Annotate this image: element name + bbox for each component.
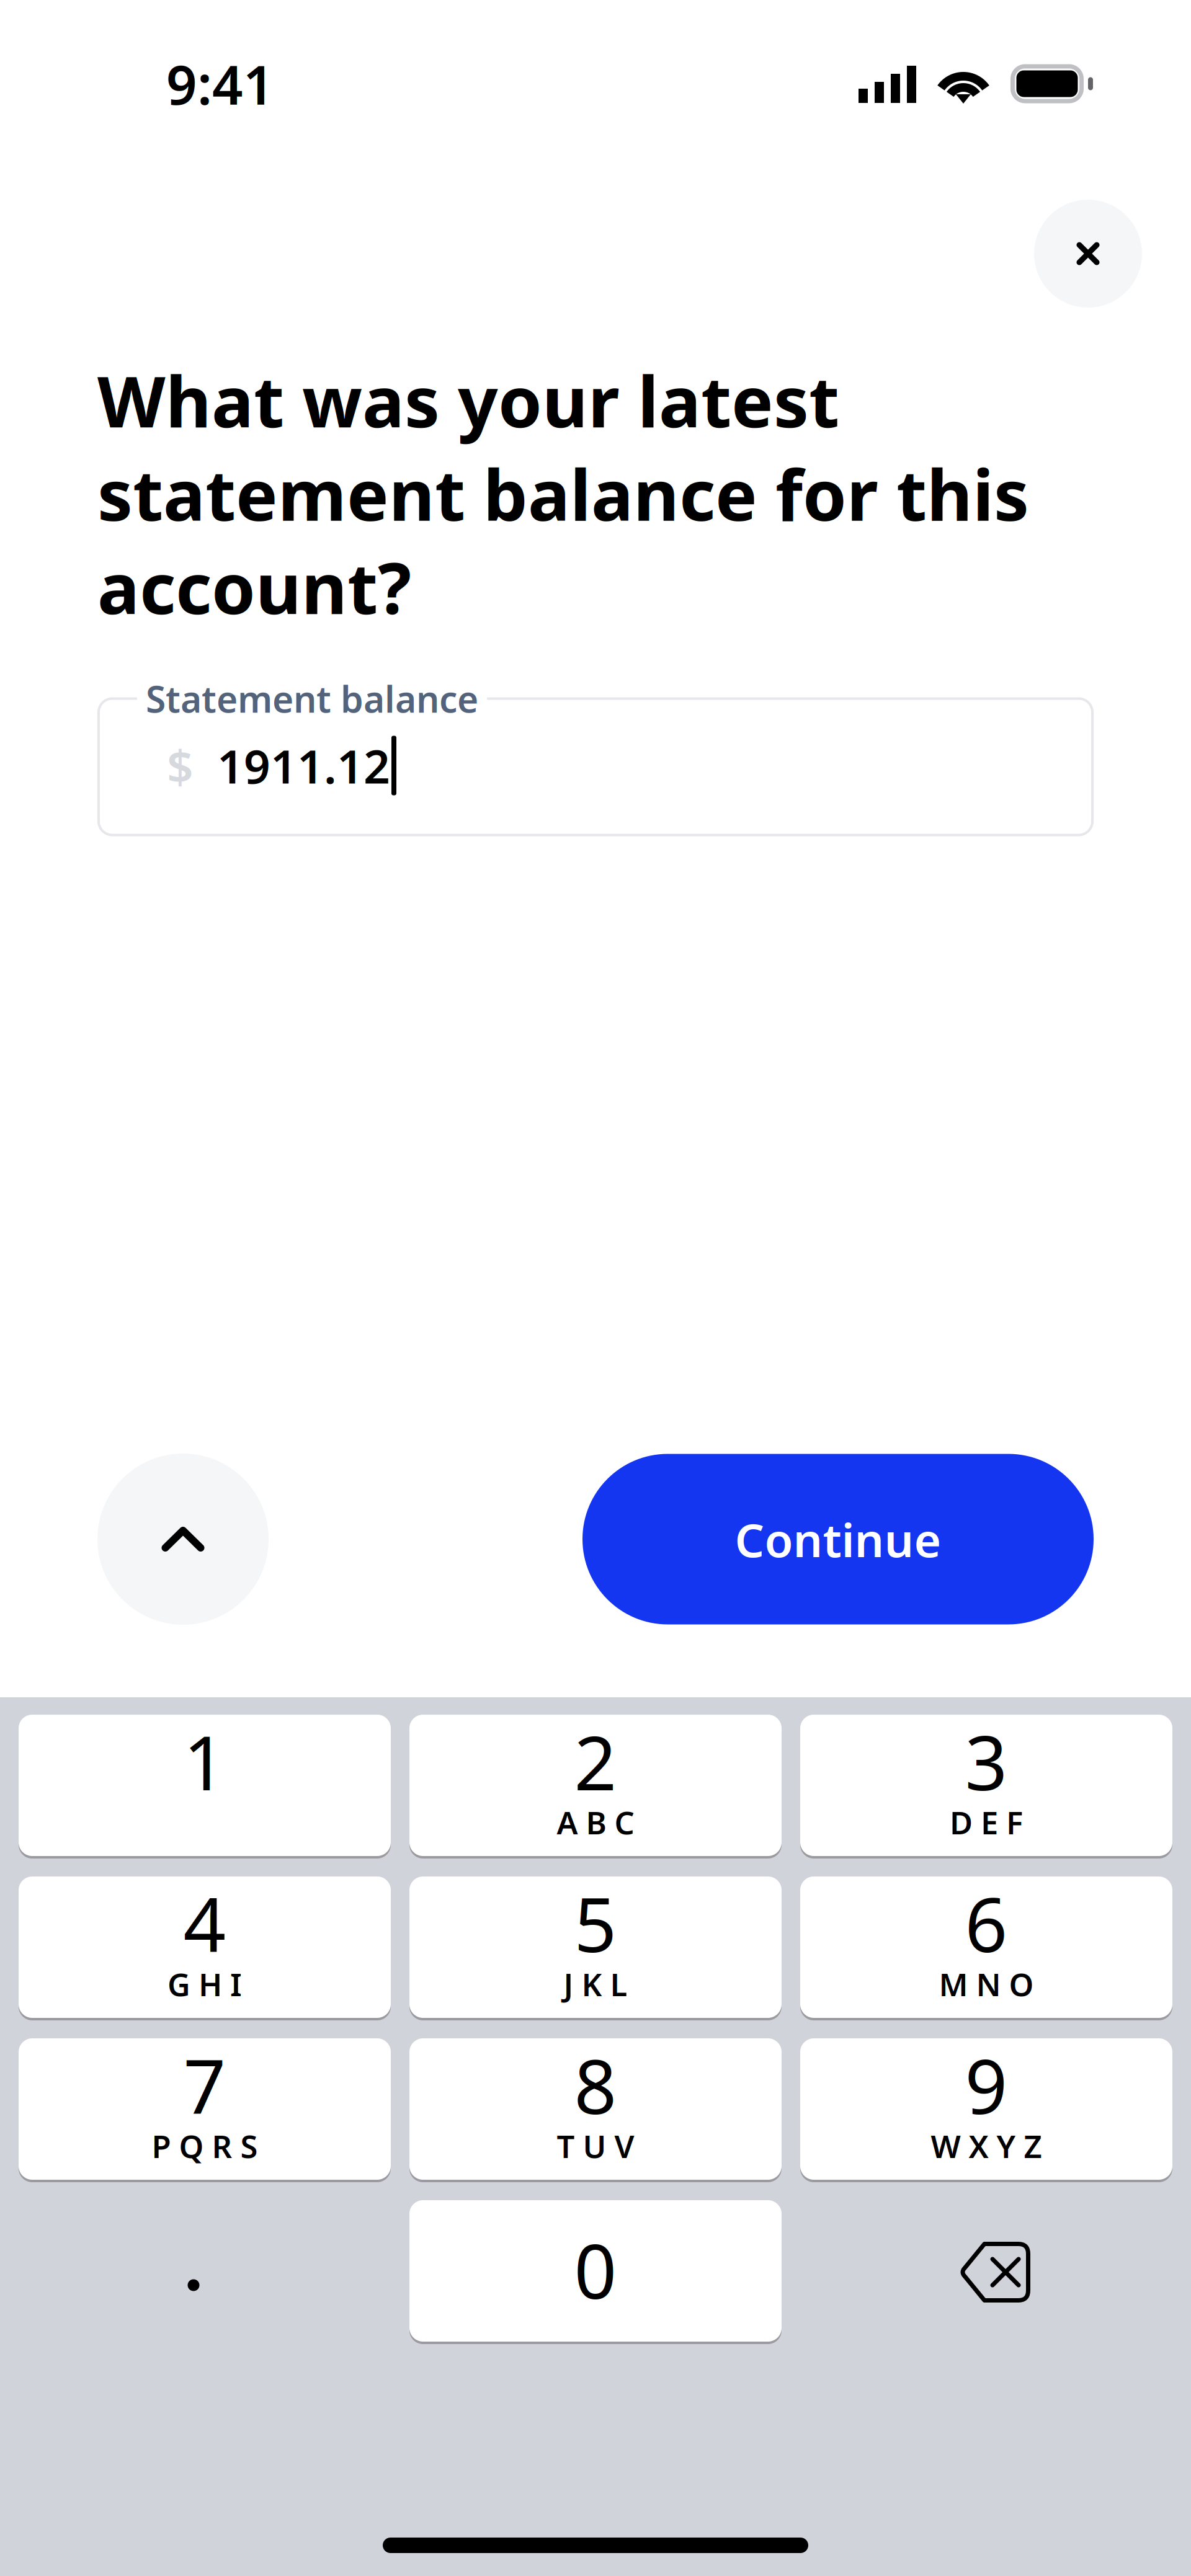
button[interactable]: 3 (800, 1715, 1172, 1859)
button[interactable]: Collapse (97, 1454, 269, 1625)
button[interactable]: 8 (409, 2038, 782, 2182)
staticText: 6 (965, 1874, 1008, 1973)
staticText: 7 (183, 2036, 226, 2134)
staticText: 9 (965, 2036, 1008, 2134)
button[interactable]: Decimal point (19, 2201, 391, 2343)
button[interactable]: 2 (409, 1715, 782, 1859)
staticText: 5 (574, 1874, 617, 1973)
staticText: $ (167, 735, 194, 796)
staticText: 8 (574, 2036, 617, 2134)
staticText: 9:41 (166, 48, 274, 119)
button[interactable]: Delete (800, 2201, 1172, 2343)
button[interactable]: 7 (19, 2038, 391, 2182)
staticText: D E F (950, 1801, 1023, 1843)
staticText: T U V (557, 2125, 634, 2167)
button[interactable]: 5 (409, 1876, 782, 2020)
button[interactable]: Continue (582, 1454, 1094, 1624)
staticText: 1 (183, 1712, 226, 1811)
staticText: Statement balance (146, 674, 478, 723)
staticText: 1911.12 (194, 735, 390, 796)
button[interactable]: 9 (800, 2038, 1172, 2182)
staticText: G H I (167, 1963, 242, 2005)
staticText: 2 (574, 1712, 617, 1811)
staticText: J K L (564, 1963, 627, 2005)
staticText: 0 (574, 2220, 617, 2319)
staticText: 4 (183, 1874, 226, 1973)
staticText: What was your latest statement balance f… (97, 353, 1029, 633)
button[interactable]: 1 (19, 1715, 391, 1859)
button[interactable]: 0 (409, 2200, 782, 2344)
staticText: A B C (557, 1801, 634, 1843)
staticText: P Q R S (152, 2125, 258, 2167)
staticText: W X Y Z (931, 2125, 1042, 2167)
button[interactable]: 6 (800, 1876, 1172, 2020)
staticText: 3 (965, 1712, 1008, 1811)
staticText: M N O (939, 1963, 1034, 2005)
button[interactable]: 4 (19, 1876, 391, 2020)
staticText: Continue (735, 1508, 941, 1570)
button[interactable]: Close (1034, 200, 1142, 308)
